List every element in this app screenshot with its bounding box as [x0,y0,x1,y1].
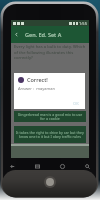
staticText: OK [73,101,79,106]
button[interactable]: Back [0,160,25,172]
button[interactable]: Menu [25,160,50,172]
button[interactable]: Back [12,30,21,39]
staticText: 1:55 [79,21,87,26]
button[interactable]: Home [50,160,75,172]
button[interactable]: OK [71,101,81,106]
button[interactable]: Trackball [44,176,56,188]
staticText: Gen. Ed. Set A [25,31,62,38]
staticText: It takes the right to drive by car but t… [16,130,84,140]
staticText: Every light has a bulb to duty. Which of… [14,44,86,60]
staticText: Answer : mayaman [18,86,55,91]
button[interactable]: It takes the right to drive by car but t… [14,126,86,143]
button[interactable]: Search [75,160,100,172]
staticText: Correct! [27,76,48,83]
staticText: Gingerbread man is a good mix to use for… [16,112,84,122]
button[interactable]: Gingerbread man is a good mix to use for… [14,111,86,122]
